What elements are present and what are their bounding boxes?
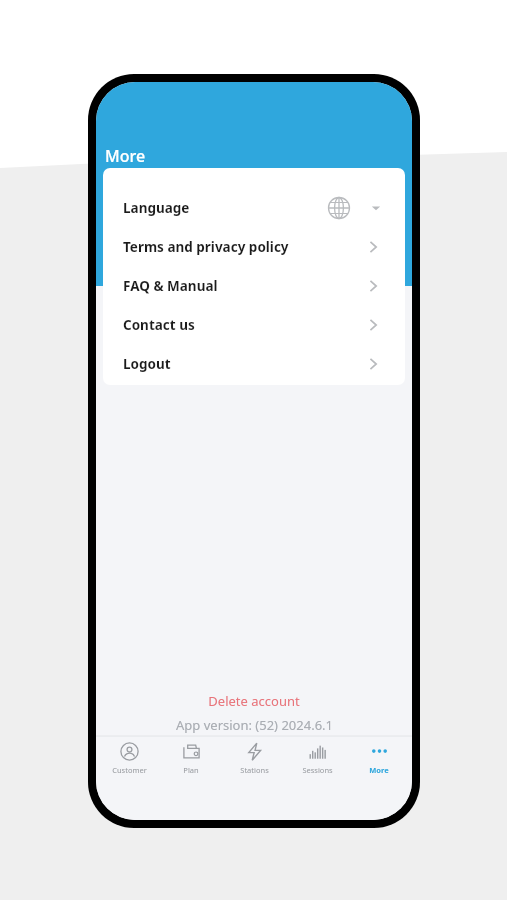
staticText: Sessions bbox=[302, 765, 333, 775]
staticText: Terms and privacy policy bbox=[123, 238, 289, 256]
staticText: FAQ & Manual bbox=[123, 277, 218, 295]
button[interactable]: Sessions bbox=[287, 737, 347, 785]
staticText: Delete account bbox=[208, 692, 300, 710]
staticText: More bbox=[369, 765, 389, 775]
button[interactable]: Logout bbox=[103, 344, 405, 383]
button[interactable]: More bbox=[349, 737, 409, 785]
staticText: App version: (52) 2024.6.1 bbox=[176, 716, 333, 734]
other: Stations bbox=[245, 742, 264, 761]
staticText: More bbox=[105, 145, 146, 167]
other: Open bbox=[365, 317, 381, 333]
other: Globe bbox=[327, 196, 351, 220]
staticText: Stations bbox=[240, 765, 269, 775]
button[interactable]: Delete account bbox=[198, 690, 310, 712]
other: More bbox=[370, 742, 389, 761]
other: Open bbox=[365, 239, 381, 255]
staticText: Logout bbox=[123, 355, 171, 373]
button[interactable]: Stations bbox=[224, 737, 284, 785]
other: Select language bbox=[371, 203, 381, 213]
other: Plan bbox=[182, 742, 201, 761]
other: Open bbox=[365, 278, 381, 294]
other: Sessions bbox=[308, 742, 327, 761]
button[interactable]: Language bbox=[103, 168, 405, 227]
staticText: Contact us bbox=[123, 316, 195, 334]
staticText: Customer bbox=[112, 765, 147, 775]
other: Customer bbox=[120, 742, 139, 761]
button[interactable]: Plan bbox=[161, 737, 221, 785]
staticText: Plan bbox=[183, 765, 199, 775]
button[interactable]: Terms and privacy policy bbox=[103, 227, 405, 266]
button[interactable]: FAQ & Manual bbox=[103, 266, 405, 305]
other: Open bbox=[365, 356, 381, 372]
staticText: Language bbox=[123, 199, 190, 217]
button[interactable]: Customer bbox=[99, 737, 159, 785]
button[interactable]: Contact us bbox=[103, 305, 405, 344]
